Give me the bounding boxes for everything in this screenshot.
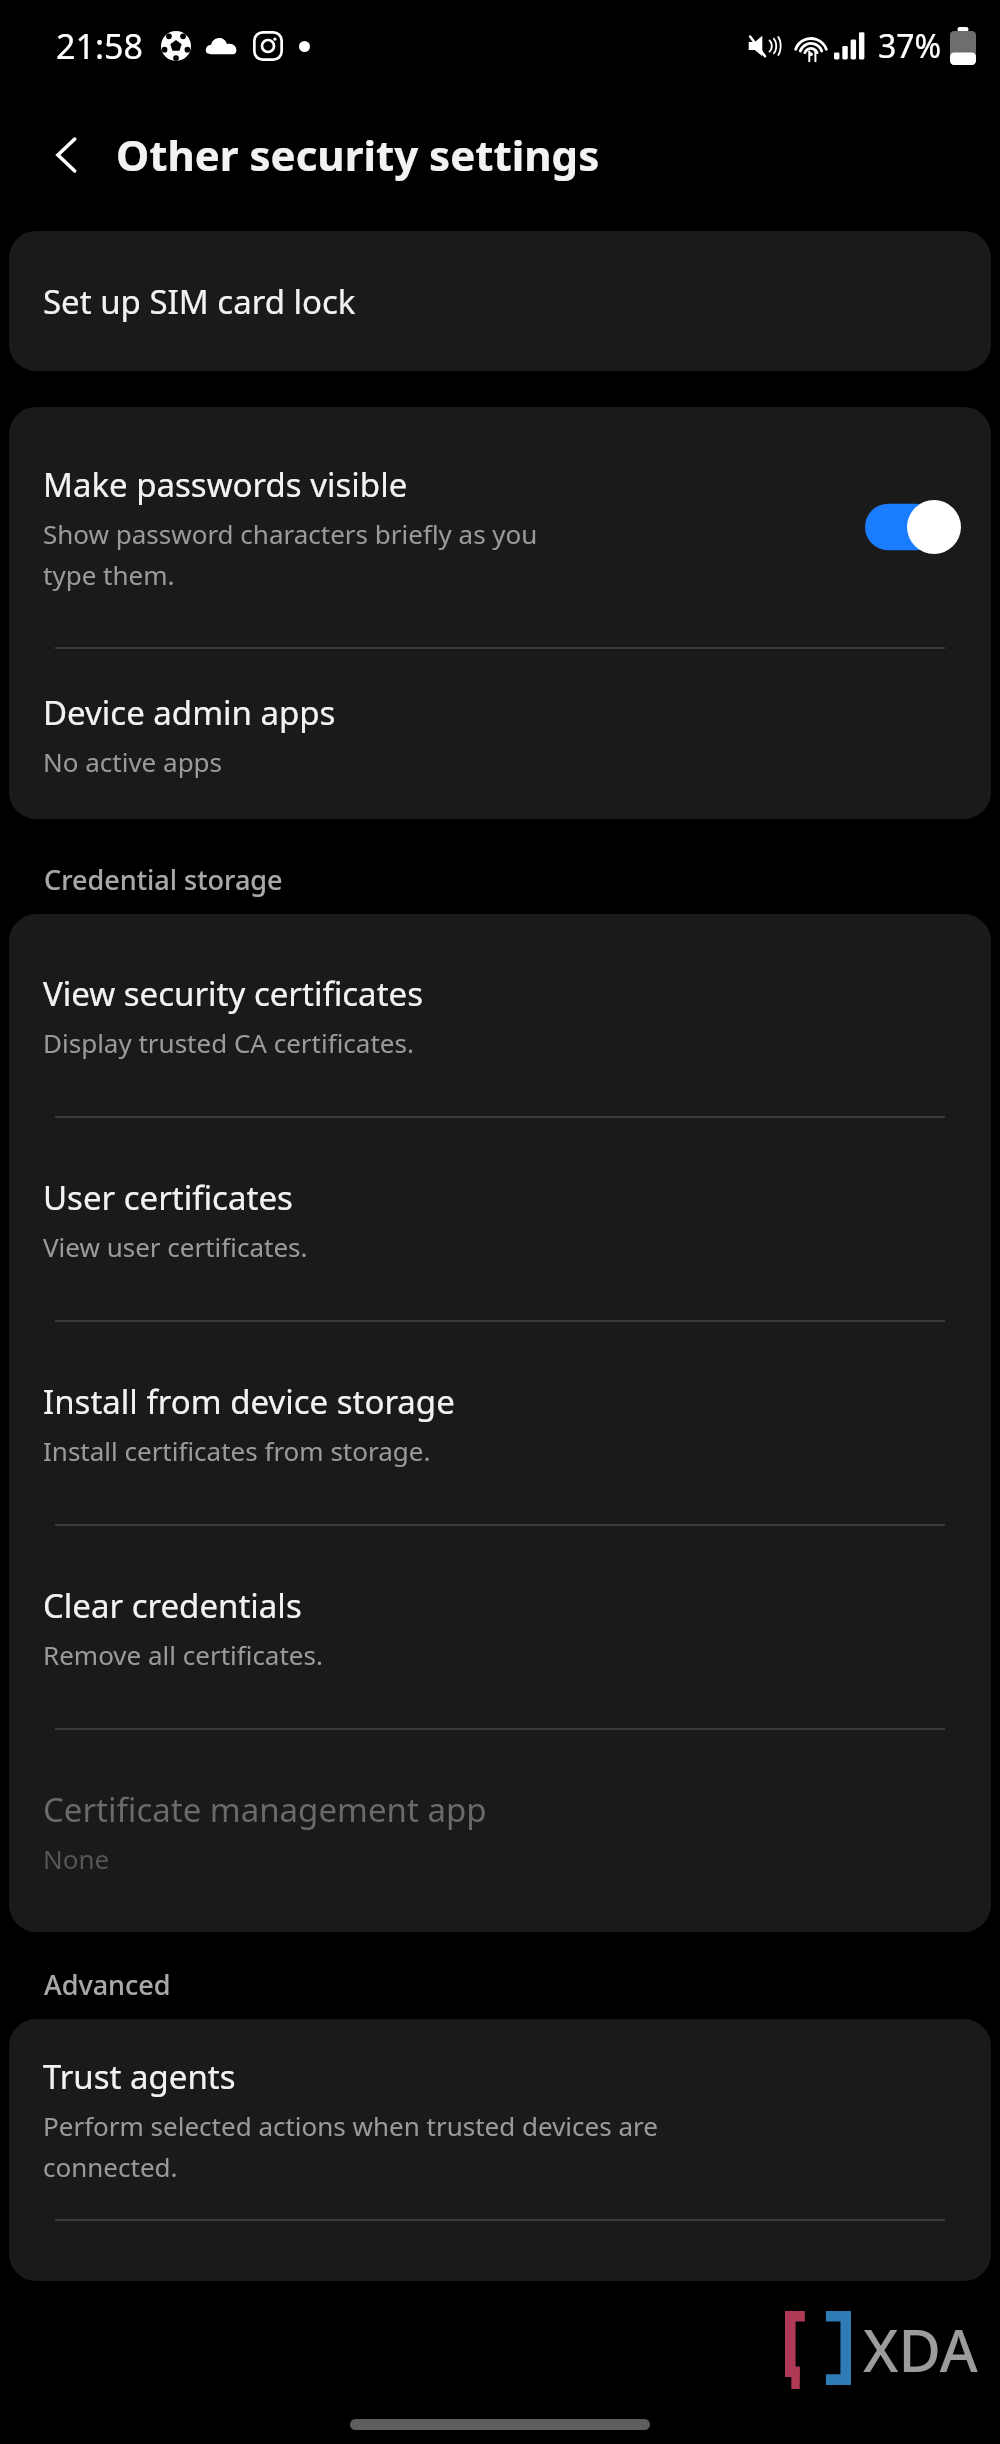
staticText: Device admin apps [43,690,336,735]
staticText: Show password characters briefly as you [43,516,538,551]
button[interactable]: Set up SIM card lock [9,231,991,371]
button[interactable]: Clear credentials [9,1526,991,1728]
staticText: None [43,1841,110,1876]
staticText: Make passwords visible [43,462,408,507]
staticText: type them. [43,557,175,592]
staticText: Credential storage [44,861,283,898]
button[interactable]: View security certificates [9,914,991,1116]
staticText: Other security settings [116,126,600,183]
staticText: Trust agents [43,2054,236,2099]
staticText: Remove all certificates. [43,1637,323,1672]
staticText: View user certificates. [43,1229,308,1264]
staticText: 21:58 [56,23,143,69]
button[interactable]: Certificate management app [9,1730,991,1932]
button[interactable]: User certificates [9,1118,991,1320]
staticText: User certificates [43,1175,293,1220]
staticText: Certificate management app [43,1787,487,1832]
button[interactable]: Device admin apps [9,649,991,819]
staticText: XDA [863,2310,978,2389]
staticText: 37% [878,24,942,68]
staticText: Perform selected actions when trusted de… [43,2108,658,2143]
button[interactable]: Make passwords visible [9,407,991,647]
staticText: Clear credentials [43,1583,302,1628]
button[interactable]: Install from device storage [9,1322,991,1524]
staticText: Install from device storage [43,1379,455,1424]
staticText: Advanced [44,1966,171,2003]
button[interactable]: Back [34,121,102,189]
button[interactable]: Trust agents [9,2019,991,2219]
staticText: Set up SIM card lock [43,279,356,324]
staticText: Install certificates from storage. [43,1433,431,1468]
button[interactable]: Make passwords visible toggle [865,500,961,554]
staticText: View security certificates [43,971,423,1016]
staticText: Display trusted CA certificates. [43,1025,414,1060]
staticText: connected. [43,2149,178,2184]
staticText: No active apps [43,744,223,779]
